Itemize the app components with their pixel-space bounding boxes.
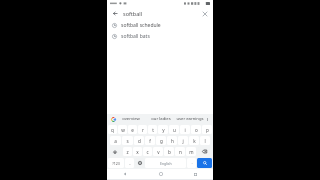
staticText: q: [111, 127, 114, 133]
button[interactable]: l: [200, 136, 210, 145]
staticText: g: [160, 138, 163, 144]
button[interactable]: More options: [204, 116, 210, 122]
button[interactable]: ?123: [108, 158, 124, 168]
staticText: m: [189, 149, 194, 155]
button[interactable]: c: [143, 147, 152, 156]
button[interactable]: p: [202, 125, 212, 134]
staticText: j: [182, 138, 184, 144]
button[interactable]: softball schedule: [107, 20, 213, 31]
button[interactable]: Shift: [108, 147, 122, 156]
button[interactable]: overview: [116, 114, 146, 124]
button[interactable]: y: [158, 125, 168, 134]
staticText: softball schedule: [121, 22, 161, 29]
button[interactable]: softball bats: [107, 31, 213, 42]
staticText: softball bats: [121, 33, 150, 40]
button[interactable]: i: [180, 125, 190, 134]
button[interactable]: t: [148, 125, 157, 134]
staticText: c: [146, 149, 149, 155]
staticText: .: [191, 160, 193, 166]
button[interactable]: e: [128, 125, 137, 134]
button[interactable]: f: [145, 136, 155, 145]
button[interactable]: Recent apps: [178, 169, 213, 179]
staticText: softball: [123, 10, 143, 17]
button[interactable]: x: [133, 147, 142, 156]
staticText: our ladies: [151, 116, 171, 122]
staticText: p: [206, 127, 209, 133]
button[interactable]: k: [189, 136, 199, 145]
button[interactable]: h: [167, 136, 177, 145]
button[interactable]: Back: [107, 7, 213, 20]
button[interactable]: m: [186, 147, 196, 156]
staticText: t: [152, 127, 154, 133]
staticText: e: [131, 127, 134, 133]
staticText: v: [157, 149, 160, 155]
staticText: l: [204, 138, 206, 144]
button[interactable]: r: [138, 125, 147, 134]
button[interactable]: Home: [143, 169, 178, 179]
button[interactable]: user earnings: [175, 114, 204, 124]
staticText: English: [160, 161, 172, 166]
button[interactable]: g: [156, 136, 166, 145]
button[interactable]: Back: [111, 9, 120, 18]
button[interactable]: q: [108, 125, 117, 134]
button[interactable]: w: [118, 125, 127, 134]
staticText: overview: [122, 116, 140, 122]
staticText: n: [179, 149, 182, 155]
button[interactable]: s: [122, 136, 133, 145]
button[interactable]: Back: [107, 169, 143, 179]
button[interactable]: a: [110, 136, 121, 145]
button[interactable]: Search: [197, 158, 212, 168]
staticText: b: [168, 149, 171, 155]
button[interactable]: ,: [125, 158, 134, 168]
button[interactable]: v: [153, 147, 163, 156]
staticText: w: [121, 127, 125, 133]
button[interactable]: Backspace: [197, 147, 212, 156]
button[interactable]: Emoji: [135, 158, 144, 168]
button[interactable]: z: [123, 147, 132, 156]
staticText: h: [171, 138, 174, 144]
staticText: r: [142, 127, 144, 133]
button[interactable]: o: [191, 125, 201, 134]
staticText: ?123: [112, 161, 120, 166]
staticText: k: [193, 138, 196, 144]
staticText: z: [126, 149, 129, 155]
button[interactable]: Google: [110, 116, 116, 122]
staticText: o: [195, 127, 198, 133]
button[interactable]: u: [169, 125, 179, 134]
button[interactable]: d: [134, 136, 144, 145]
button[interactable]: n: [175, 147, 185, 156]
staticText: i: [184, 127, 186, 133]
staticText: u: [173, 127, 176, 133]
button[interactable]: Clear search: [200, 9, 209, 18]
staticText: y: [162, 127, 165, 133]
button[interactable]: b: [164, 147, 174, 156]
button[interactable]: our ladies: [146, 114, 175, 124]
staticText: ,: [129, 160, 131, 166]
staticText: x: [136, 149, 139, 155]
staticText: a: [114, 138, 117, 144]
staticText: f: [149, 138, 151, 144]
staticText: s: [126, 138, 129, 144]
button[interactable]: Space: [145, 158, 186, 168]
button[interactable]: j: [178, 136, 188, 145]
staticText: d: [138, 138, 141, 144]
staticText: user earnings: [176, 116, 204, 122]
